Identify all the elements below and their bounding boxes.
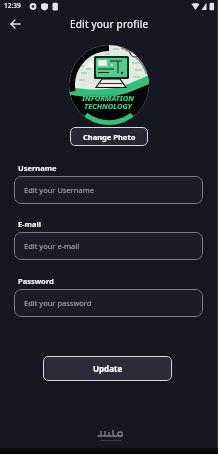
staticText: Edit your e-mail	[24, 241, 80, 251]
staticText: TECHNOLOGY	[69, 101, 148, 111]
button[interactable]	[6, 15, 24, 33]
button[interactable]: INFORMATION	[69, 45, 149, 125]
button[interactable]: Edit your Username	[14, 176, 203, 204]
staticText: Username	[18, 163, 57, 173]
staticText: Password	[18, 276, 54, 286]
staticText: Change Photo	[83, 132, 136, 142]
button[interactable]: Change Photo	[70, 127, 148, 146]
button[interactable]: Edit your password	[14, 289, 203, 317]
button[interactable]: Edit your e-mail	[14, 232, 203, 260]
button[interactable]: Update	[43, 356, 172, 381]
staticText: INFORMATION	[69, 93, 148, 103]
staticText: E-mail	[18, 219, 41, 229]
staticText: 12:39	[4, 1, 21, 10]
staticText: Edit your password	[24, 298, 92, 308]
staticText: Edit your Username	[24, 185, 94, 195]
staticText: Update	[93, 363, 123, 374]
staticText: Edit your profile	[70, 17, 149, 31]
